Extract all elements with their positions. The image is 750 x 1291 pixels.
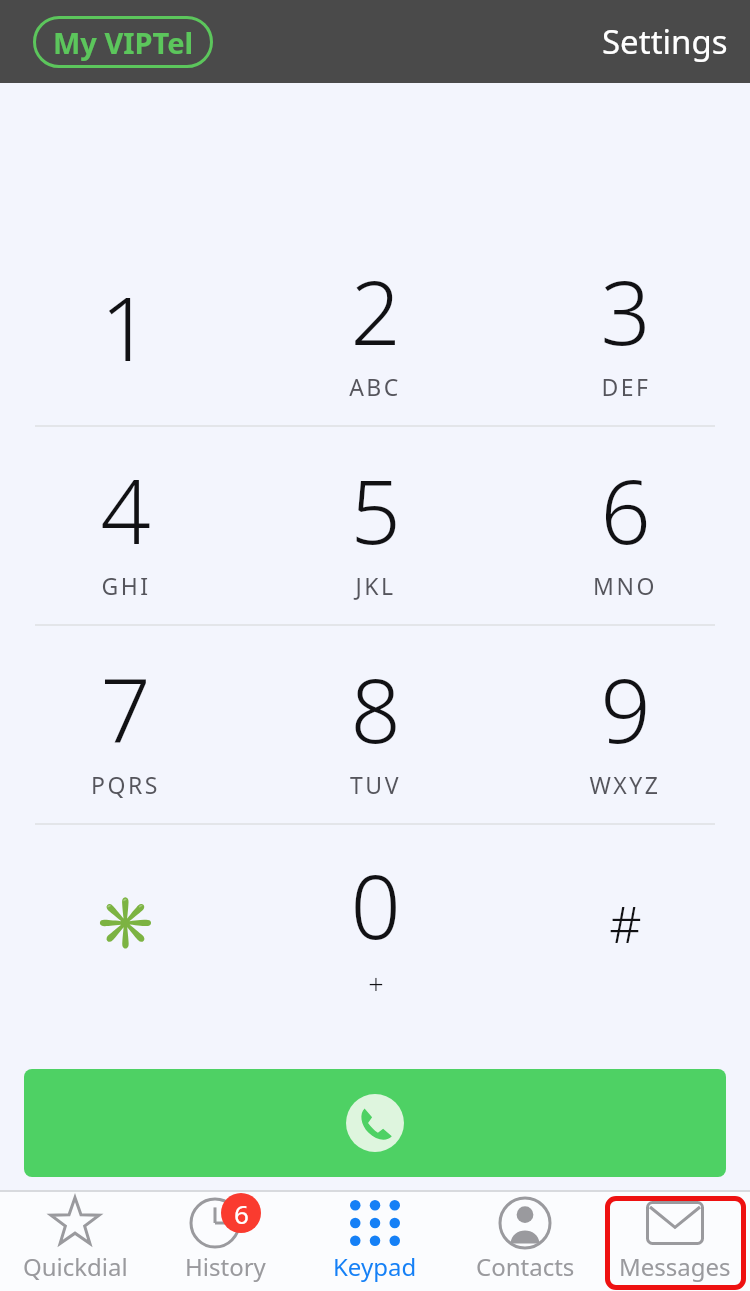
staticText: 2	[350, 251, 401, 371]
staticText: Keypad	[333, 1250, 417, 1283]
staticText: 7	[100, 649, 151, 769]
staticText: My VIPTel	[53, 23, 194, 62]
button[interactable]: Settings	[602, 19, 728, 64]
button[interactable]: #	[500, 825, 750, 1022]
button[interactable]: 8	[250, 626, 500, 823]
staticText: Contacts	[476, 1250, 575, 1283]
staticText: Settings	[602, 19, 728, 64]
staticText: TUV	[350, 769, 401, 800]
staticText: 5	[350, 450, 401, 570]
button[interactable]: 9	[500, 626, 750, 823]
button[interactable]: 2	[250, 228, 500, 425]
staticText: DEF	[601, 371, 651, 402]
staticText: History	[185, 1250, 266, 1283]
staticText: Messages	[619, 1250, 731, 1283]
button[interactable]: Call	[24, 1069, 726, 1177]
staticText: PQRS	[91, 769, 160, 800]
staticText: ✳	[94, 894, 157, 953]
button[interactable]: 6	[150, 1192, 300, 1291]
button[interactable]: 7	[0, 626, 250, 823]
button[interactable]: 0	[250, 825, 500, 1022]
staticText: 6	[234, 1196, 249, 1231]
staticText: 8	[350, 649, 401, 769]
staticText: +	[368, 965, 384, 1002]
staticText: 4	[100, 450, 151, 570]
staticText: #	[609, 890, 642, 958]
staticText: WXYZ	[589, 769, 661, 800]
staticText: 0	[350, 845, 401, 965]
button[interactable]: Contacts	[450, 1192, 600, 1291]
button[interactable]: 6	[500, 427, 750, 624]
staticText: GHI	[101, 570, 151, 601]
button[interactable]: 5	[250, 427, 500, 624]
button[interactable]: Messages	[600, 1192, 750, 1291]
staticText: 1	[100, 267, 151, 387]
staticText: MNO	[593, 570, 657, 601]
staticText: 3	[600, 251, 651, 371]
button[interactable]: 4	[0, 427, 250, 624]
button[interactable]: My VIPTel	[33, 16, 213, 68]
button[interactable]: 1	[0, 228, 250, 425]
staticText: Quickdial	[23, 1250, 128, 1283]
button[interactable]: Quickdial	[0, 1192, 150, 1291]
staticText: ABC	[349, 371, 401, 402]
staticText: 9	[600, 649, 651, 769]
button[interactable]: ✳	[0, 825, 250, 1022]
staticText: JKL	[355, 570, 396, 601]
button[interactable]: Keypad	[300, 1192, 450, 1291]
staticText: 6	[600, 450, 651, 570]
button[interactable]: 3	[500, 228, 750, 425]
